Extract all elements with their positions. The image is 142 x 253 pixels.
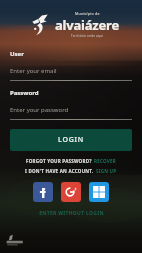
staticText: FORGOT YOUR PASSWORD?: [26, 158, 92, 164]
button[interactable]: Enter your password: [10, 106, 132, 114]
staticText: ENTER WITHOUT LOGIN: [39, 210, 104, 217]
staticText: RECOVER: [94, 158, 117, 164]
button[interactable]: Sign in with Microsoft: [89, 182, 109, 202]
staticText: SIGN UP: [96, 168, 117, 174]
staticText: User: [10, 50, 24, 58]
staticText: Enter your email: [10, 67, 57, 75]
staticText: Password: [10, 89, 39, 97]
button[interactable]: LOGIN: [10, 129, 132, 151]
staticText: Território onde aqui: [71, 34, 104, 38]
staticText: LOGIN: [58, 135, 85, 145]
button[interactable]: ENTER WITHOUT LOGIN: [10, 210, 132, 217]
staticText: alvaiázere: [55, 16, 120, 34]
button[interactable]: FORGOT YOUR PASSWORD?: [10, 158, 132, 164]
button[interactable]: Sign in with Facebook: [33, 182, 53, 202]
staticText: I DON'T HAVE AN ACCOUNT.: [25, 168, 94, 174]
button[interactable]: Enter your email: [10, 67, 132, 75]
button[interactable]: Sign in with Google: [61, 182, 81, 202]
button[interactable]: I DON'T HAVE AN ACCOUNT.: [10, 168, 132, 174]
staticText: Enter your password: [10, 106, 69, 114]
staticText: Município de: [75, 11, 100, 16]
